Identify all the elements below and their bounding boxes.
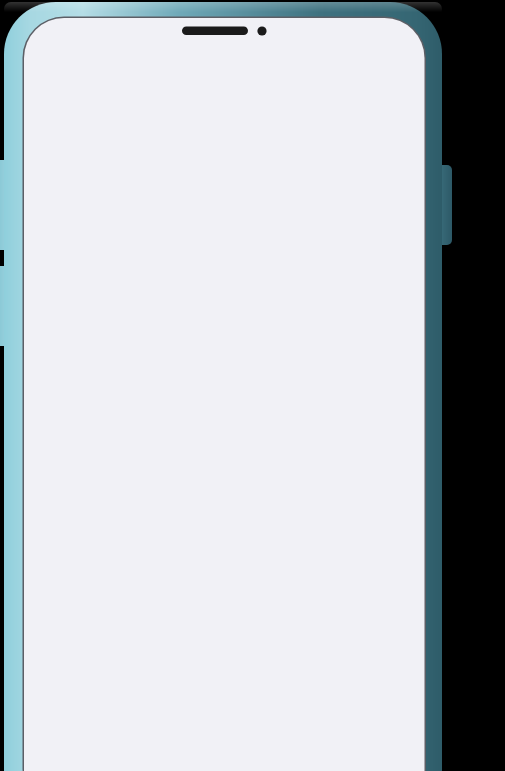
button[interactable]: Phone device mockup [0, 0, 505, 771]
